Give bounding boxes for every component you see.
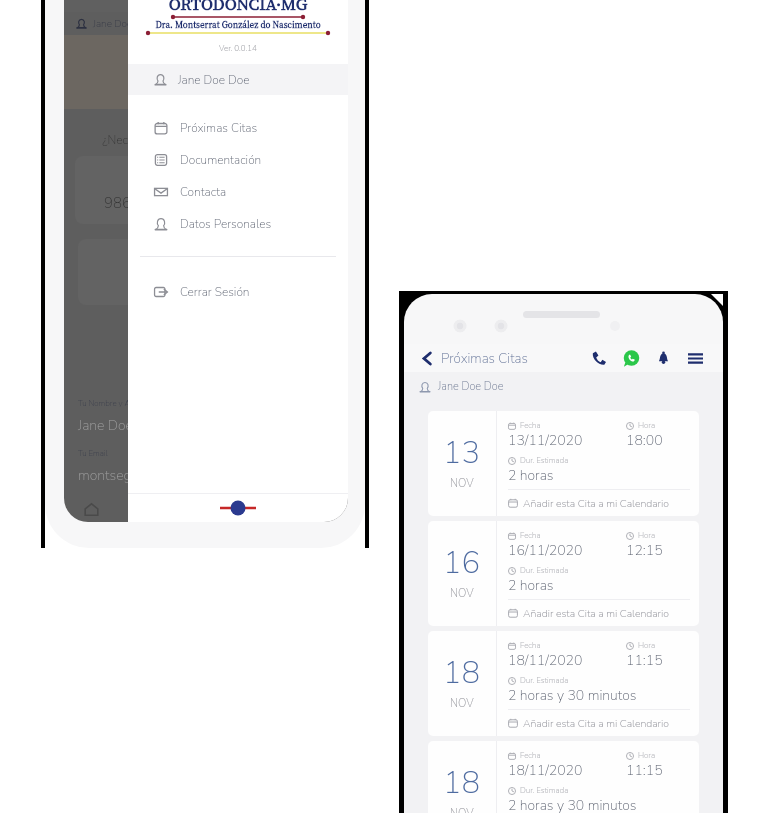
button[interactable]: Jane Doe Doe: [128, 64, 348, 95]
staticText: Documentación: [180, 152, 262, 168]
staticText: Tu Nombre y Apellidos: [78, 398, 158, 409]
staticText: NOV: [450, 586, 474, 601]
staticText: 16/11/2020: [508, 541, 583, 560]
button[interactable]: Cerrar Sesión: [128, 276, 348, 308]
staticText: 18/11/2020: [508, 761, 583, 780]
staticText: 2 horas y 30 minutos: [508, 796, 637, 813]
button[interactable]: 18: [428, 631, 699, 736]
staticText: Fecha: [520, 530, 541, 541]
staticText: Jane Doe Doe: [78, 416, 162, 435]
button[interactable]: Back: [417, 348, 437, 368]
button[interactable]: 13: [428, 411, 699, 516]
staticText: Dra. Montserrat González do Nascimento: [128, 19, 348, 31]
button[interactable]: Añadir esta Cita a mi Calendario: [508, 710, 690, 736]
staticText: Ver. 0.0.14: [128, 43, 348, 54]
staticText: Jane Doe Doe: [178, 72, 250, 88]
staticText: Tu Email: [78, 448, 108, 459]
staticText: NOV: [450, 696, 474, 711]
staticText: ORTODONCIA·MG: [128, 0, 348, 15]
staticText: 986 123 456: [104, 193, 193, 213]
staticText: 18/11/2020: [508, 651, 583, 670]
button[interactable]: 16: [428, 521, 699, 626]
staticText: Próximas Citas: [441, 349, 528, 367]
button[interactable]: Call: [587, 346, 611, 370]
button[interactable]: 18: [428, 741, 699, 813]
staticText: 11:15: [626, 651, 663, 670]
staticText: montsegonzalez@: [78, 466, 191, 485]
staticText: Dur. Estimada: [520, 565, 569, 576]
staticText: Hora: [638, 640, 655, 651]
staticText: Fecha: [520, 420, 541, 431]
button[interactable]: Añadir esta Cita a mi Calendario: [508, 600, 690, 626]
staticText: NOV: [450, 806, 474, 813]
staticText: 13/11/2020: [508, 431, 583, 450]
button[interactable]: Documentación: [128, 144, 348, 176]
button[interactable]: Contacta: [128, 176, 348, 208]
button[interactable]: Datos Personales: [128, 208, 348, 240]
staticText: 11:15: [626, 761, 663, 780]
button[interactable]: Próximas Citas: [128, 112, 348, 144]
button[interactable]: WhatsApp: [619, 346, 643, 370]
staticText: Hora: [638, 530, 655, 541]
staticText: 2 horas: [508, 466, 554, 485]
staticText: Añadir esta Cita a mi Calendario: [523, 716, 669, 730]
staticText: Dur. Estimada: [520, 455, 569, 466]
staticText: 18: [443, 762, 481, 804]
staticText: Jane Doe Doe: [438, 379, 504, 394]
staticText: Añadir esta Cita a mi Calendario: [523, 606, 669, 620]
staticText: Añadir esta Cita a mi Calendario: [523, 496, 669, 510]
button[interactable]: Añadir esta Cita a mi Calendario: [508, 490, 690, 516]
button[interactable]: Notifications: [651, 346, 675, 370]
staticText: ¿Necesitas ayuda?: [64, 132, 236, 148]
staticText: Contacta: [180, 184, 227, 200]
staticText: Dur. Estimada: [520, 675, 569, 686]
staticText: Hora: [638, 420, 655, 431]
staticText: Dur. Estimada: [520, 785, 569, 796]
staticText: Hora: [638, 750, 655, 761]
staticText: Fecha: [520, 750, 541, 761]
staticText: Cerrar Sesión: [180, 284, 250, 300]
staticText: 18:00: [626, 431, 663, 450]
staticText: Jane Doe Doe: [93, 17, 153, 31]
staticText: 18: [443, 652, 481, 694]
staticText: 13: [443, 432, 481, 474]
staticText: NOV: [450, 476, 474, 491]
staticText: Próximas Citas: [180, 120, 258, 136]
staticText: 2 horas y 30 minutos: [508, 686, 637, 705]
button[interactable]: Menu: [683, 346, 707, 370]
staticText: Fecha: [520, 640, 541, 651]
staticText: 16: [443, 542, 481, 584]
staticText: Datos Personales: [180, 216, 272, 232]
staticText: 12:15: [626, 541, 663, 560]
staticText: 2 horas: [508, 576, 554, 595]
